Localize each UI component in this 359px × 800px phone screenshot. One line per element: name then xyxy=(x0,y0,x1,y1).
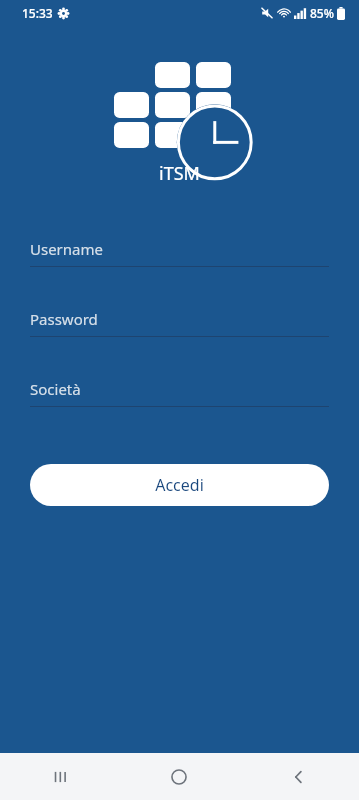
button[interactable]: Recent apps xyxy=(0,753,119,800)
button[interactable]: Password xyxy=(30,309,329,337)
button[interactable]: Accedi xyxy=(30,464,329,506)
button[interactable]: Home xyxy=(119,753,239,800)
button[interactable]: Back xyxy=(239,753,359,800)
staticText: 85% xyxy=(310,5,334,21)
staticText: iTSM xyxy=(159,161,200,186)
staticText: Password xyxy=(30,309,98,329)
button[interactable]: Società xyxy=(30,379,329,407)
button[interactable]: Username xyxy=(30,239,329,267)
staticText: 15:33 xyxy=(22,5,53,21)
staticText: Username xyxy=(30,239,103,259)
staticText: Accedi xyxy=(155,474,204,496)
staticText: Società xyxy=(30,379,81,399)
